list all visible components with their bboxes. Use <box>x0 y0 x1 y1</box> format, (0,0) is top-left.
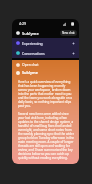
other: New <box>72 42 75 45</box>
staticText: Sublyme <box>22 31 39 36</box>
button[interactable]: New chat <box>60 30 77 36</box>
staticText: Sublyme <box>22 70 38 75</box>
staticText: Conversations <box>22 51 45 56</box>
staticText: Open chat <box>22 62 39 67</box>
staticText: New chat <box>62 31 75 35</box>
button[interactable]: Experiencing <box>12 38 79 48</box>
staticText: Experiencing <box>22 41 43 46</box>
staticText: 4:29 <box>19 21 27 26</box>
other: New <box>72 52 75 55</box>
button[interactable]: Open chat <box>12 60 79 69</box>
staticText: Here's a quick overview of everything th… <box>18 80 75 160</box>
button[interactable]: Conversations <box>12 48 79 58</box>
